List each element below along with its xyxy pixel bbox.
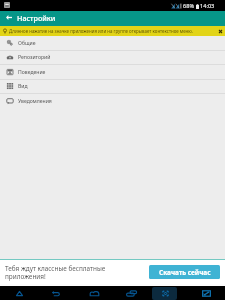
staticText: Скачать сейчас bbox=[159, 268, 211, 277]
button[interactable]: Скачать сейчас bbox=[149, 265, 220, 279]
staticText: Поведение bbox=[18, 69, 46, 76]
button[interactable]: Репозиторий bbox=[0, 50, 225, 64]
button[interactable]: Up bbox=[0, 286, 38, 300]
button[interactable]: Общие bbox=[0, 36, 225, 50]
button[interactable]: Back bbox=[0, 11, 17, 26]
button[interactable]: Поведение bbox=[0, 65, 225, 79]
staticText: 68% bbox=[183, 2, 195, 10]
button[interactable]: Уведомления bbox=[0, 94, 225, 108]
staticText: Репозиторий bbox=[18, 54, 51, 61]
button[interactable]: Screenshot bbox=[146, 286, 184, 300]
button[interactable]: Recent apps bbox=[112, 286, 150, 300]
staticText: Общие bbox=[18, 40, 36, 47]
button[interactable]: Home bbox=[75, 286, 113, 300]
button[interactable]: Full screen bbox=[187, 286, 225, 300]
staticText: Длинное нажатие на значке приложения или… bbox=[9, 28, 193, 34]
staticText: Настройки bbox=[17, 13, 56, 23]
button[interactable]: Вид bbox=[0, 79, 225, 93]
button[interactable]: Back bbox=[37, 286, 75, 300]
staticText: Вид bbox=[18, 83, 28, 90]
staticText: Уведомления bbox=[18, 98, 52, 105]
staticText: 14:03 bbox=[200, 2, 215, 10]
button[interactable]: Close tip bbox=[215, 26, 225, 36]
staticText: Тебя ждут классные бесплатные приложения… bbox=[5, 264, 113, 281]
